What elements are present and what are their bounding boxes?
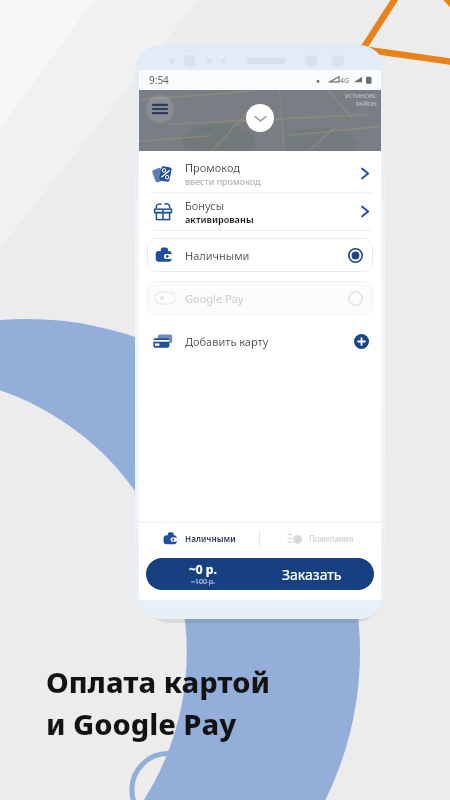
button[interactable]: Collapse [246, 104, 274, 132]
staticText: Оплата картой [46, 662, 270, 701]
staticText: 4G [340, 76, 350, 86]
button[interactable]: Menu [146, 95, 174, 123]
staticText: ввести промокод [185, 175, 261, 187]
staticText: активированы [185, 213, 254, 225]
staticText: ~0 р. [189, 561, 217, 577]
button[interactable]: Наличными [139, 522, 259, 554]
staticText: 9:54 [149, 73, 169, 87]
staticText: Google Pay [185, 291, 348, 306]
button[interactable]: Google Pay [147, 281, 373, 315]
staticText: Добавить карту [185, 334, 354, 349]
button[interactable]: Добавить карту [139, 324, 381, 358]
staticText: Наличными [185, 248, 348, 263]
button[interactable]: Бонусы [139, 193, 381, 230]
staticText: Наличными [185, 533, 236, 544]
staticText: УСТИНОВС [345, 92, 377, 100]
button[interactable]: Пожелания [260, 522, 381, 554]
staticText: РАЙОН [356, 100, 377, 108]
staticText: Заказать [282, 565, 342, 584]
staticText: Пожелания [309, 533, 354, 544]
button[interactable]: Наличными [147, 238, 373, 272]
staticText: и Google Pay [46, 704, 237, 743]
button[interactable]: Промокод [139, 155, 381, 192]
staticText: Бонусы [185, 198, 225, 213]
staticText: Промокод [185, 160, 240, 175]
staticText: ~100 р. [191, 577, 215, 587]
button[interactable]: ~0 р. [146, 558, 374, 590]
